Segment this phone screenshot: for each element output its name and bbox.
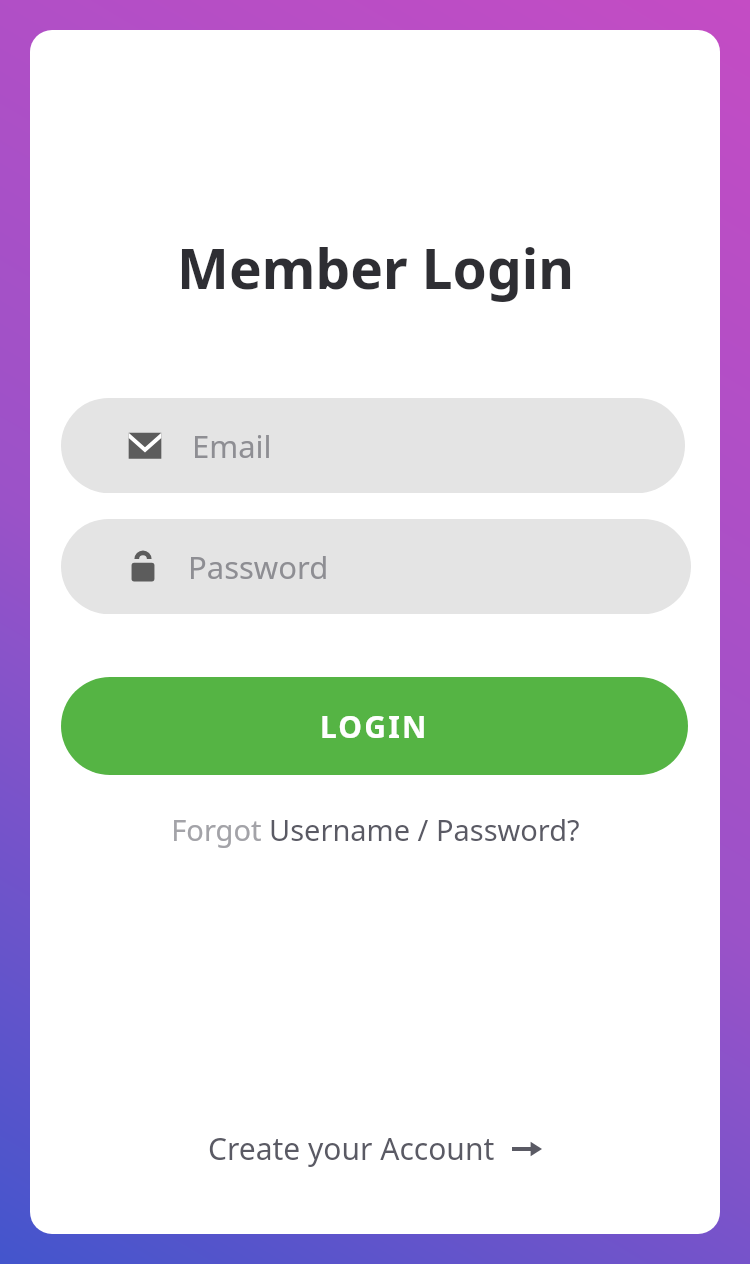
other: Password [130, 551, 156, 582]
button[interactable]: Email [61, 398, 685, 493]
other: Email [128, 431, 162, 460]
button[interactable]: Forgot Username / Password? [163, 806, 588, 853]
button[interactable]: LOGIN [61, 677, 688, 775]
staticText: Forgot Username / Password? [171, 810, 580, 849]
staticText: Email [192, 425, 272, 467]
staticText: Password [188, 546, 329, 588]
button[interactable]: Create your Account [198, 1122, 552, 1175]
staticText: LOGIN [320, 706, 429, 747]
staticText: Member Login [177, 230, 574, 305]
staticText: Create your Account [208, 1128, 495, 1169]
button[interactable]: Password [61, 519, 691, 614]
other: Create your Account [512, 1138, 542, 1160]
